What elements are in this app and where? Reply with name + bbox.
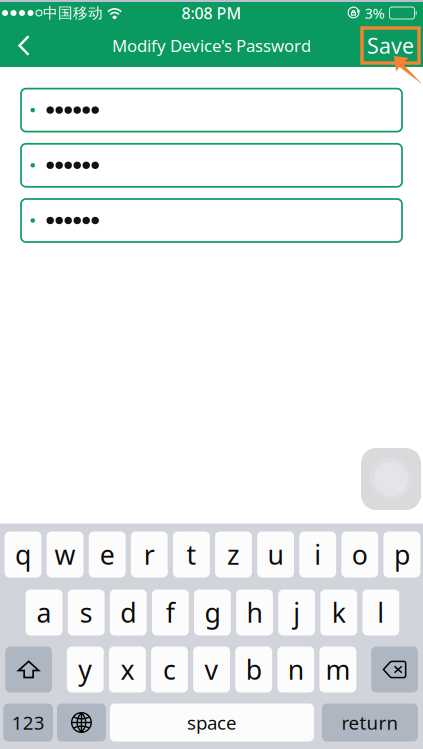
button[interactable]: g [194, 589, 231, 635]
staticText: d [120, 595, 136, 630]
button[interactable]: q [5, 531, 41, 577]
button[interactable]: z [215, 531, 252, 577]
button[interactable]: b [235, 646, 272, 692]
button[interactable]: e [89, 531, 126, 577]
staticText: space [187, 710, 237, 735]
staticText: o [352, 537, 368, 572]
staticText: Save [367, 31, 414, 60]
button[interactable]: Delete [371, 646, 418, 692]
button[interactable]: y [67, 646, 104, 692]
staticText: s [80, 595, 93, 630]
button[interactable]: k [320, 589, 357, 635]
button[interactable]: c [151, 646, 188, 692]
staticText: h [246, 595, 262, 630]
button[interactable]: d [110, 589, 147, 635]
staticText: i [314, 537, 321, 572]
staticText: a [37, 595, 52, 630]
button[interactable]: f [152, 589, 189, 635]
button[interactable]: Save [365, 31, 416, 59]
button[interactable]: r [131, 531, 168, 577]
button[interactable]: h [236, 589, 273, 635]
staticText: n [288, 652, 304, 687]
staticText: 8:08 PM [181, 2, 241, 24]
staticText: p [394, 537, 410, 572]
button[interactable]: return [322, 703, 418, 741]
button[interactable]: o [341, 531, 378, 577]
staticText: 3% [364, 3, 384, 23]
staticText: b [246, 652, 262, 687]
button[interactable]: AssistiveTouch [361, 448, 421, 510]
staticText: z [227, 537, 240, 572]
staticText: Modify Device's Password [112, 34, 311, 57]
button[interactable]: j [278, 589, 315, 635]
button[interactable]: l [362, 589, 399, 635]
button[interactable]: Next keyboard [57, 703, 106, 741]
button[interactable]: w [47, 531, 83, 577]
button[interactable]: u [257, 531, 294, 577]
staticText: c [163, 652, 176, 687]
staticText: r [144, 537, 155, 572]
button[interactable]: s [68, 589, 105, 635]
staticText: j [293, 595, 300, 630]
button[interactable]: space [110, 703, 314, 741]
staticText: f [166, 595, 175, 630]
staticText: return [341, 710, 398, 735]
staticText: q [15, 537, 31, 572]
staticText: y [78, 652, 92, 687]
staticText: 中国移动 [43, 4, 103, 22]
button[interactable]: a [26, 589, 62, 635]
staticText: g [204, 595, 220, 630]
button[interactable]: Back [0, 24, 48, 67]
staticText: k [332, 595, 346, 630]
button[interactable]: i [299, 531, 336, 577]
staticText: x [120, 652, 134, 687]
button[interactable]: t [173, 531, 210, 577]
button[interactable]: m [319, 646, 356, 692]
staticText: w [55, 537, 76, 572]
button[interactable]: v [193, 646, 230, 692]
staticText: m [325, 652, 350, 687]
button[interactable]: n [277, 646, 314, 692]
staticText: l [377, 595, 384, 630]
staticText: e [100, 537, 115, 572]
button[interactable]: 123 [3, 703, 53, 741]
staticText: v [205, 652, 219, 687]
staticText: 123 [12, 710, 45, 735]
button[interactable]: p [383, 531, 420, 577]
button[interactable]: Shift [5, 646, 52, 692]
staticText: u [268, 537, 284, 572]
staticText: t [186, 537, 196, 572]
button[interactable]: x [109, 646, 146, 692]
